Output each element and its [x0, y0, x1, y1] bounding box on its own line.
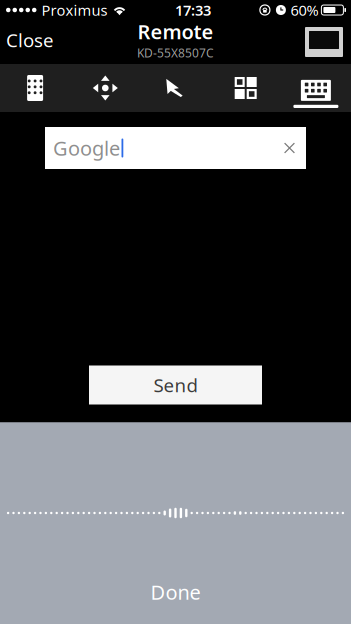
button[interactable]: Keyboard	[281, 64, 351, 112]
button[interactable]: Clear text	[275, 129, 304, 166]
button[interactable]: Done	[126, 571, 224, 613]
button[interactable]: Pointer	[140, 64, 211, 112]
button[interactable]: Apps	[211, 64, 281, 112]
staticText: KD-55X8507C	[137, 45, 214, 61]
staticText: 60%	[290, 0, 318, 20]
staticText: Proximus	[41, 0, 107, 20]
button[interactable]: Send	[89, 365, 262, 404]
staticText: Send	[153, 373, 197, 397]
staticText: Close	[6, 28, 54, 52]
button[interactable]: Close	[0, 20, 64, 60]
staticText: Remote	[137, 18, 213, 45]
staticText: Done	[150, 579, 200, 605]
staticText: 17:33	[175, 0, 211, 20]
button[interactable]: Connected TV	[300, 23, 348, 61]
button[interactable]: Remote buttons	[0, 64, 70, 112]
staticText: Google	[53, 135, 120, 161]
button[interactable]: Directional pad	[70, 64, 140, 112]
